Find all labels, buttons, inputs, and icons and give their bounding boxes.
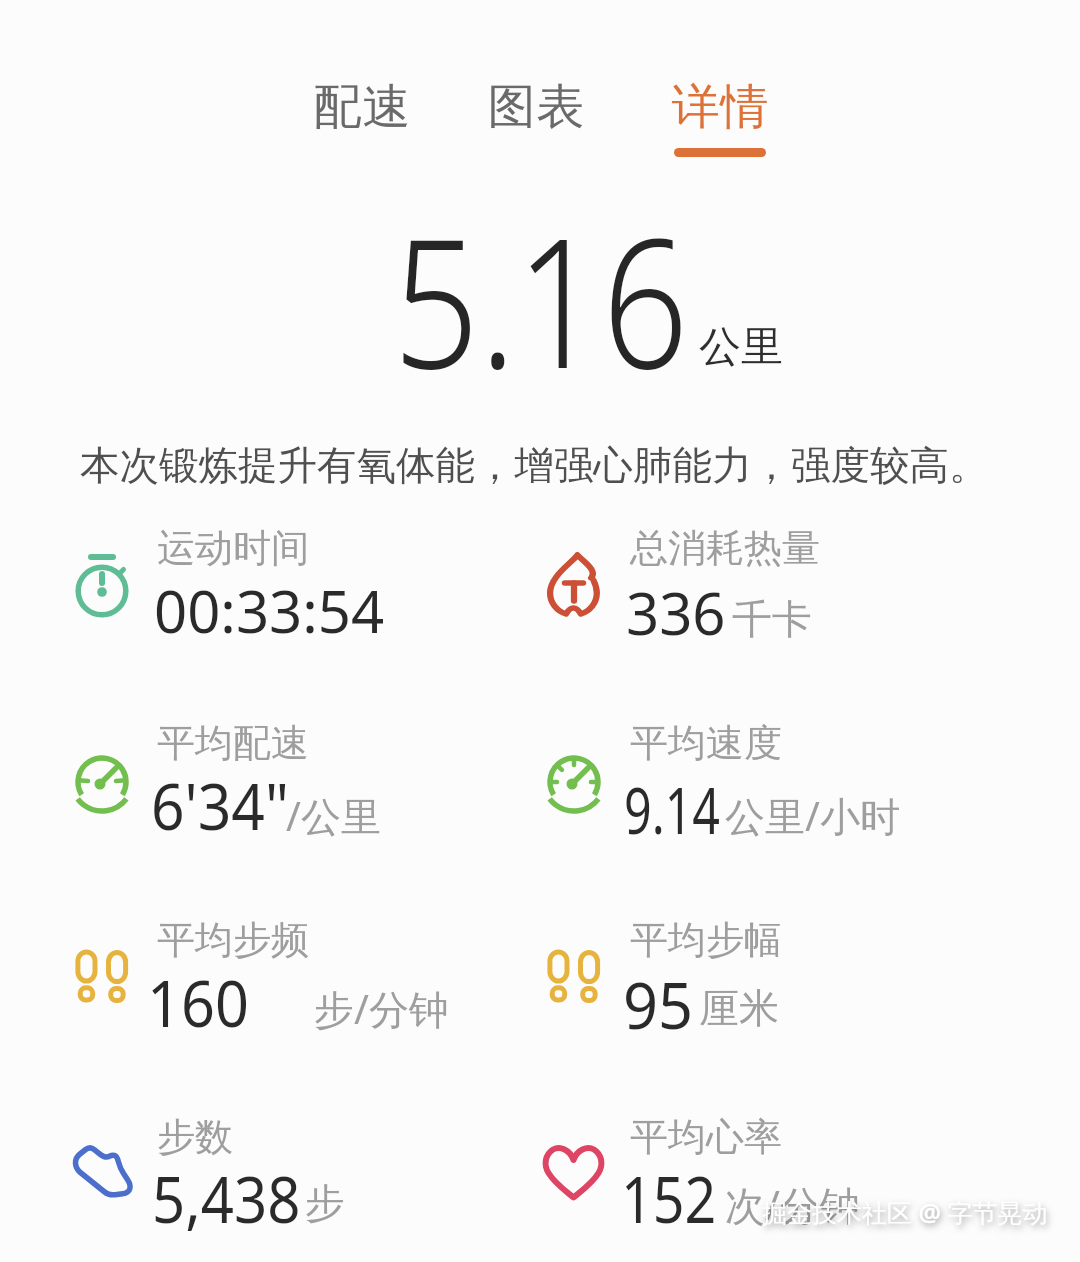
- staticText: 步数: [157, 1113, 233, 1161]
- staticText: 千卡: [732, 594, 812, 644]
- staticText: 详情: [671, 77, 769, 137]
- staticText: 9.14: [624, 765, 720, 853]
- staticText: 平均步频: [157, 916, 309, 964]
- staticText: 336: [626, 573, 726, 652]
- staticText: 掘金技术社区 @ 字节晃动: [762, 1195, 1048, 1229]
- staticText: 平均步幅: [630, 916, 782, 964]
- staticText: 平均速度: [630, 719, 782, 767]
- staticText: 平均心率: [630, 1113, 782, 1161]
- staticText: 本次锻炼提升有氧体能，增强心肺能力，强度较高。: [80, 441, 989, 491]
- staticText: /公里: [286, 788, 381, 843]
- staticText: 步/分钟: [314, 981, 449, 1036]
- button[interactable]: 配速: [274, 65, 450, 149]
- staticText: 5.16: [393, 178, 689, 420]
- staticText: 配速: [313, 77, 411, 137]
- staticText: 厘米: [699, 983, 779, 1033]
- staticText: 152: [621, 1154, 716, 1242]
- staticText: 总消耗热量: [630, 524, 820, 572]
- staticText: 步: [305, 1178, 345, 1228]
- button[interactable]: 详情: [632, 65, 808, 149]
- staticText: 公里: [699, 321, 783, 374]
- staticText: 6'34": [151, 761, 289, 849]
- staticText: 公里/小时: [725, 788, 900, 843]
- staticText: 次/分钟: [725, 1177, 860, 1232]
- staticText: 运动时间: [157, 524, 309, 572]
- staticText: 00:33:54: [154, 571, 385, 650]
- staticText: 图表: [487, 77, 585, 137]
- button[interactable]: 图表: [448, 65, 624, 149]
- staticText: 95: [623, 960, 693, 1048]
- staticText: 平均配速: [157, 719, 309, 767]
- staticText: 160: [147, 958, 249, 1046]
- staticText: 5,438: [152, 1154, 300, 1242]
